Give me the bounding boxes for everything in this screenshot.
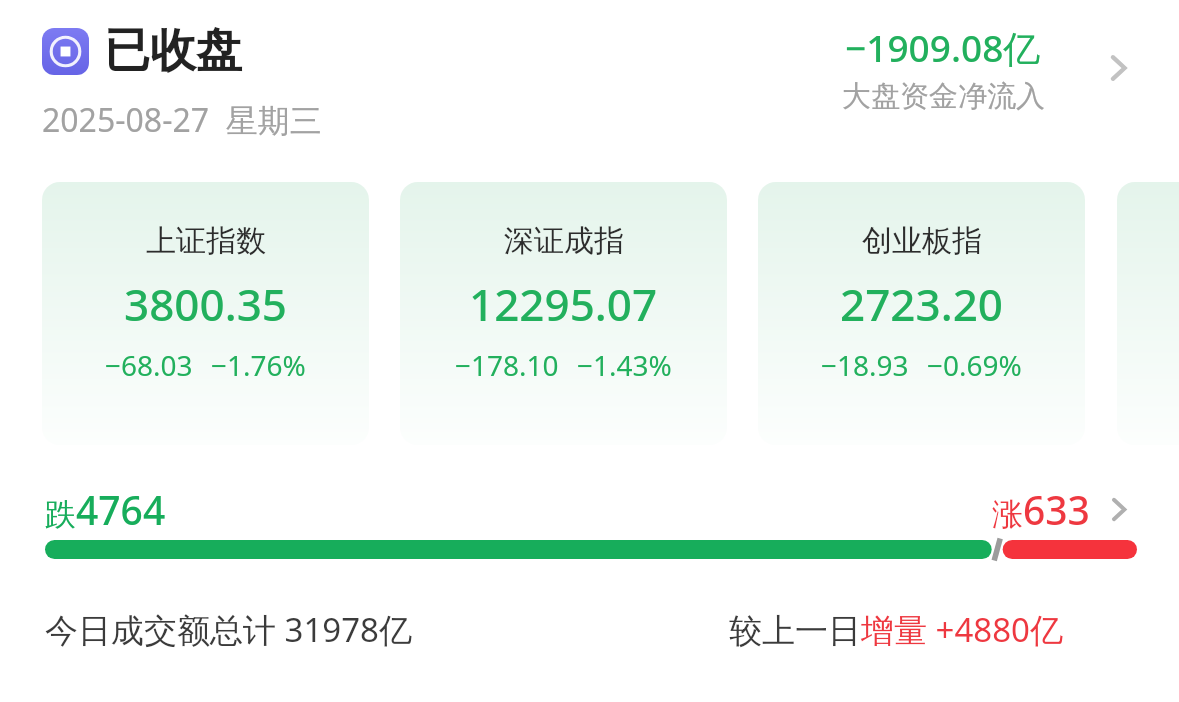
staticText: −1.76% bbox=[211, 346, 306, 384]
staticText: 12295.07 bbox=[469, 274, 658, 334]
staticText: 2025-08-27 星期三 bbox=[42, 98, 322, 142]
staticText: −178.10 bbox=[455, 346, 559, 384]
button[interactable]: 创业板指 bbox=[758, 182, 1085, 445]
staticText: 创业板指 bbox=[862, 222, 982, 260]
staticText: −68.03 bbox=[105, 346, 193, 384]
other: 查看大盘资金净流入详情 bbox=[1096, 46, 1140, 90]
staticText: 已收盘 bbox=[104, 22, 242, 80]
staticText: −0.69% bbox=[927, 346, 1022, 384]
staticText: 上证指数 bbox=[146, 222, 266, 260]
button[interactable]: 今日成交额总计 31978亿 bbox=[45, 600, 412, 658]
staticText: 3800.35 bbox=[124, 274, 287, 334]
staticText: 今日成交额总计 31978亿 bbox=[45, 607, 412, 652]
button[interactable]: 已收盘 bbox=[42, 22, 472, 142]
staticText: −1.43% bbox=[577, 346, 672, 384]
staticText: −1909.08亿 bbox=[845, 22, 1041, 73]
button[interactable]: 科创50指 bbox=[1117, 182, 1179, 445]
staticText: 较上一日增量 +4880亿 bbox=[729, 607, 1063, 652]
other: 查看涨跌家数详情 bbox=[1098, 489, 1139, 530]
staticText: 深证成指 bbox=[504, 222, 624, 260]
staticText: 2723.20 bbox=[840, 274, 1003, 334]
button[interactable]: 深证成指 bbox=[400, 182, 727, 445]
button[interactable]: 跌4764 bbox=[45, 480, 1139, 538]
button[interactable]: 上证指数 bbox=[42, 182, 369, 445]
staticText: 大盘资金净流入 bbox=[842, 78, 1045, 115]
button[interactable]: 较上一日增量 +4880亿 bbox=[729, 600, 1063, 658]
staticText: −18.93 bbox=[821, 346, 909, 384]
staticText: 跌4764 bbox=[45, 483, 166, 536]
button[interactable]: −1909.08亿 bbox=[790, 14, 1140, 122]
staticText: 涨633 bbox=[992, 483, 1090, 536]
